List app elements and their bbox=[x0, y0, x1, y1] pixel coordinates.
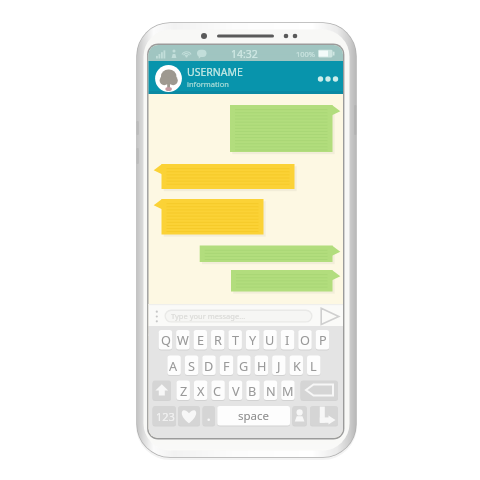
staticText: 14:32 bbox=[231, 47, 258, 61]
button[interactable]: P bbox=[316, 330, 329, 350]
staticText: D bbox=[204, 357, 214, 374]
staticText: X bbox=[197, 382, 205, 399]
staticText: space bbox=[238, 408, 270, 424]
button[interactable]: E bbox=[194, 330, 207, 350]
button[interactable]: C bbox=[211, 381, 224, 401]
button[interactable]: V bbox=[229, 381, 242, 401]
button[interactable]: Send bbox=[318, 306, 341, 327]
staticText: Q bbox=[161, 331, 171, 348]
button[interactable]: K bbox=[290, 356, 303, 376]
button[interactable]: space bbox=[217, 406, 290, 426]
staticText: J bbox=[277, 357, 281, 374]
button[interactable]: B bbox=[246, 381, 259, 401]
button[interactable]: J bbox=[272, 356, 285, 376]
button[interactable]: USERNAME bbox=[152, 61, 310, 94]
button[interactable]: R bbox=[211, 330, 224, 350]
button[interactable]: M bbox=[281, 381, 294, 401]
button[interactable]: G bbox=[237, 356, 250, 376]
staticText: B bbox=[248, 382, 257, 399]
button[interactable]: X bbox=[194, 381, 207, 401]
button[interactable]: I bbox=[281, 330, 294, 350]
staticText: T bbox=[232, 331, 240, 348]
staticText: F bbox=[223, 357, 230, 374]
staticText: M bbox=[282, 382, 294, 399]
staticText: S bbox=[188, 357, 195, 374]
staticText: information bbox=[187, 79, 229, 89]
staticText: R bbox=[214, 331, 222, 348]
staticText: C bbox=[213, 382, 222, 399]
button[interactable]: Q bbox=[159, 330, 172, 350]
staticText: E bbox=[197, 331, 205, 348]
button[interactable]: Return bbox=[310, 406, 338, 426]
staticText: L bbox=[310, 357, 317, 374]
staticText: Y bbox=[249, 331, 257, 348]
button[interactable]: O bbox=[298, 330, 311, 350]
staticText: Type your message... bbox=[171, 311, 246, 321]
button[interactable]: U bbox=[263, 330, 276, 350]
button[interactable]: T bbox=[229, 330, 242, 350]
button[interactable]: A bbox=[167, 356, 180, 376]
button[interactable]: Period bbox=[203, 406, 216, 426]
button[interactable]: N bbox=[264, 381, 277, 401]
staticText: O bbox=[300, 331, 310, 348]
button[interactable]: S bbox=[185, 356, 198, 376]
button[interactable]: D bbox=[202, 356, 215, 376]
button[interactable]: L bbox=[307, 356, 320, 376]
button[interactable]: Type your message... bbox=[164, 309, 312, 323]
staticText: V bbox=[232, 382, 240, 399]
button[interactable]: Voice input bbox=[292, 406, 307, 426]
button[interactable]: More options bbox=[314, 66, 343, 92]
staticText: N bbox=[266, 382, 276, 399]
button[interactable]: Emoji bbox=[178, 406, 200, 426]
button[interactable]: H bbox=[255, 356, 268, 376]
staticText: K bbox=[293, 357, 301, 374]
button[interactable]: Shift bbox=[153, 381, 172, 401]
staticText: I bbox=[285, 331, 290, 348]
staticText: W bbox=[177, 331, 189, 348]
staticText: 100% bbox=[296, 49, 316, 59]
button[interactable]: Z bbox=[177, 381, 190, 401]
staticText: Z bbox=[180, 382, 188, 399]
button[interactable]: W bbox=[176, 330, 189, 350]
staticText: 123 bbox=[156, 409, 175, 424]
button[interactable]: 123 bbox=[153, 406, 177, 426]
staticText: U bbox=[265, 331, 275, 348]
button[interactable]: F bbox=[220, 356, 233, 376]
staticText: P bbox=[319, 331, 327, 348]
staticText: H bbox=[257, 357, 267, 374]
staticText: A bbox=[169, 357, 178, 374]
button[interactable]: Y bbox=[246, 330, 259, 350]
staticText: G bbox=[239, 357, 249, 374]
button[interactable]: Backspace bbox=[301, 381, 339, 401]
staticText: USERNAME bbox=[187, 65, 243, 79]
